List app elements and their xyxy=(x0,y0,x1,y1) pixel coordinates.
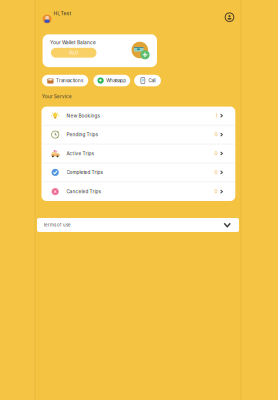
staticText: Call xyxy=(148,78,155,83)
button[interactable]: New Bookings xyxy=(41,106,235,125)
staticText: Terms of use xyxy=(43,222,71,228)
staticText: 0 xyxy=(214,169,217,175)
staticText: Rs.0 xyxy=(69,50,78,55)
staticText: 0 xyxy=(214,189,217,194)
staticText: Hi, Test xyxy=(53,10,71,16)
staticText: Your Wallet Balance xyxy=(50,39,96,45)
staticText: 1 xyxy=(215,113,217,119)
staticText: 0 xyxy=(214,132,217,137)
button[interactable]: Active Trips xyxy=(41,144,235,163)
button[interactable]: Call xyxy=(134,75,161,86)
staticText: Transactions xyxy=(56,78,83,83)
staticText: Whatsapp xyxy=(106,78,126,83)
staticText: Canceled Trips xyxy=(66,189,100,194)
staticText: New Bookings xyxy=(66,113,99,118)
button[interactable]: Canceled Trips xyxy=(41,182,235,201)
button[interactable]: Profile xyxy=(222,9,237,25)
button[interactable]: Completed Trips xyxy=(41,163,235,182)
button[interactable]: Terms of use xyxy=(37,218,239,232)
staticText: 0 xyxy=(214,151,217,156)
button[interactable]: Transactions xyxy=(42,75,88,86)
staticText: Your Service xyxy=(42,94,72,99)
staticText: Active Trips xyxy=(66,151,93,156)
button[interactable]: Pending Trips xyxy=(41,125,235,144)
staticText: Pending Trips xyxy=(66,132,97,137)
button[interactable]: Whatsapp xyxy=(93,75,130,86)
staticText: Completed Trips xyxy=(66,170,102,175)
